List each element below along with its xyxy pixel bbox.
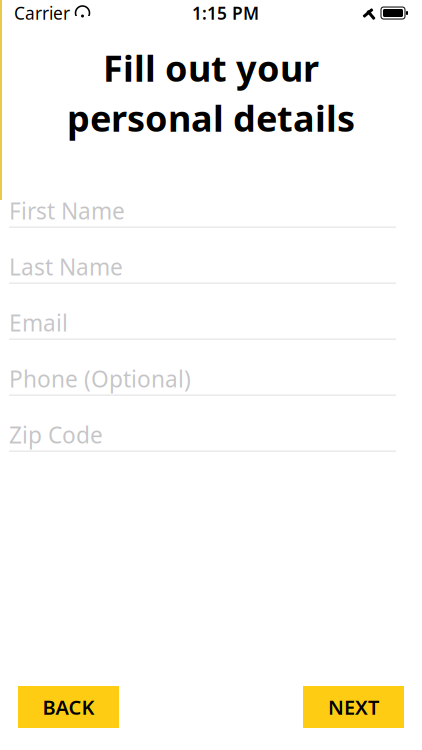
staticText: Carrier <box>14 1 70 24</box>
button[interactable]: NEXT <box>303 686 404 728</box>
staticText: BACK <box>42 694 94 720</box>
staticText: NEXT <box>328 694 379 720</box>
button[interactable]: Phone (Optional) <box>0 366 422 422</box>
button[interactable]: First Name <box>0 198 422 254</box>
staticText: Fill out your <box>103 44 319 92</box>
staticText: Zip Code <box>9 420 103 450</box>
staticText: 1:15 PM <box>192 1 259 24</box>
button[interactable]: Last Name <box>0 254 422 310</box>
staticText: personal details <box>67 94 355 142</box>
staticText: Email <box>9 308 68 338</box>
button[interactable]: BACK <box>18 686 119 728</box>
staticText: Phone (Optional) <box>9 364 191 394</box>
staticText: Last Name <box>9 252 123 282</box>
button[interactable]: Zip Code <box>0 422 422 478</box>
staticText: First Name <box>9 196 125 226</box>
button[interactable]: Email <box>0 310 422 366</box>
